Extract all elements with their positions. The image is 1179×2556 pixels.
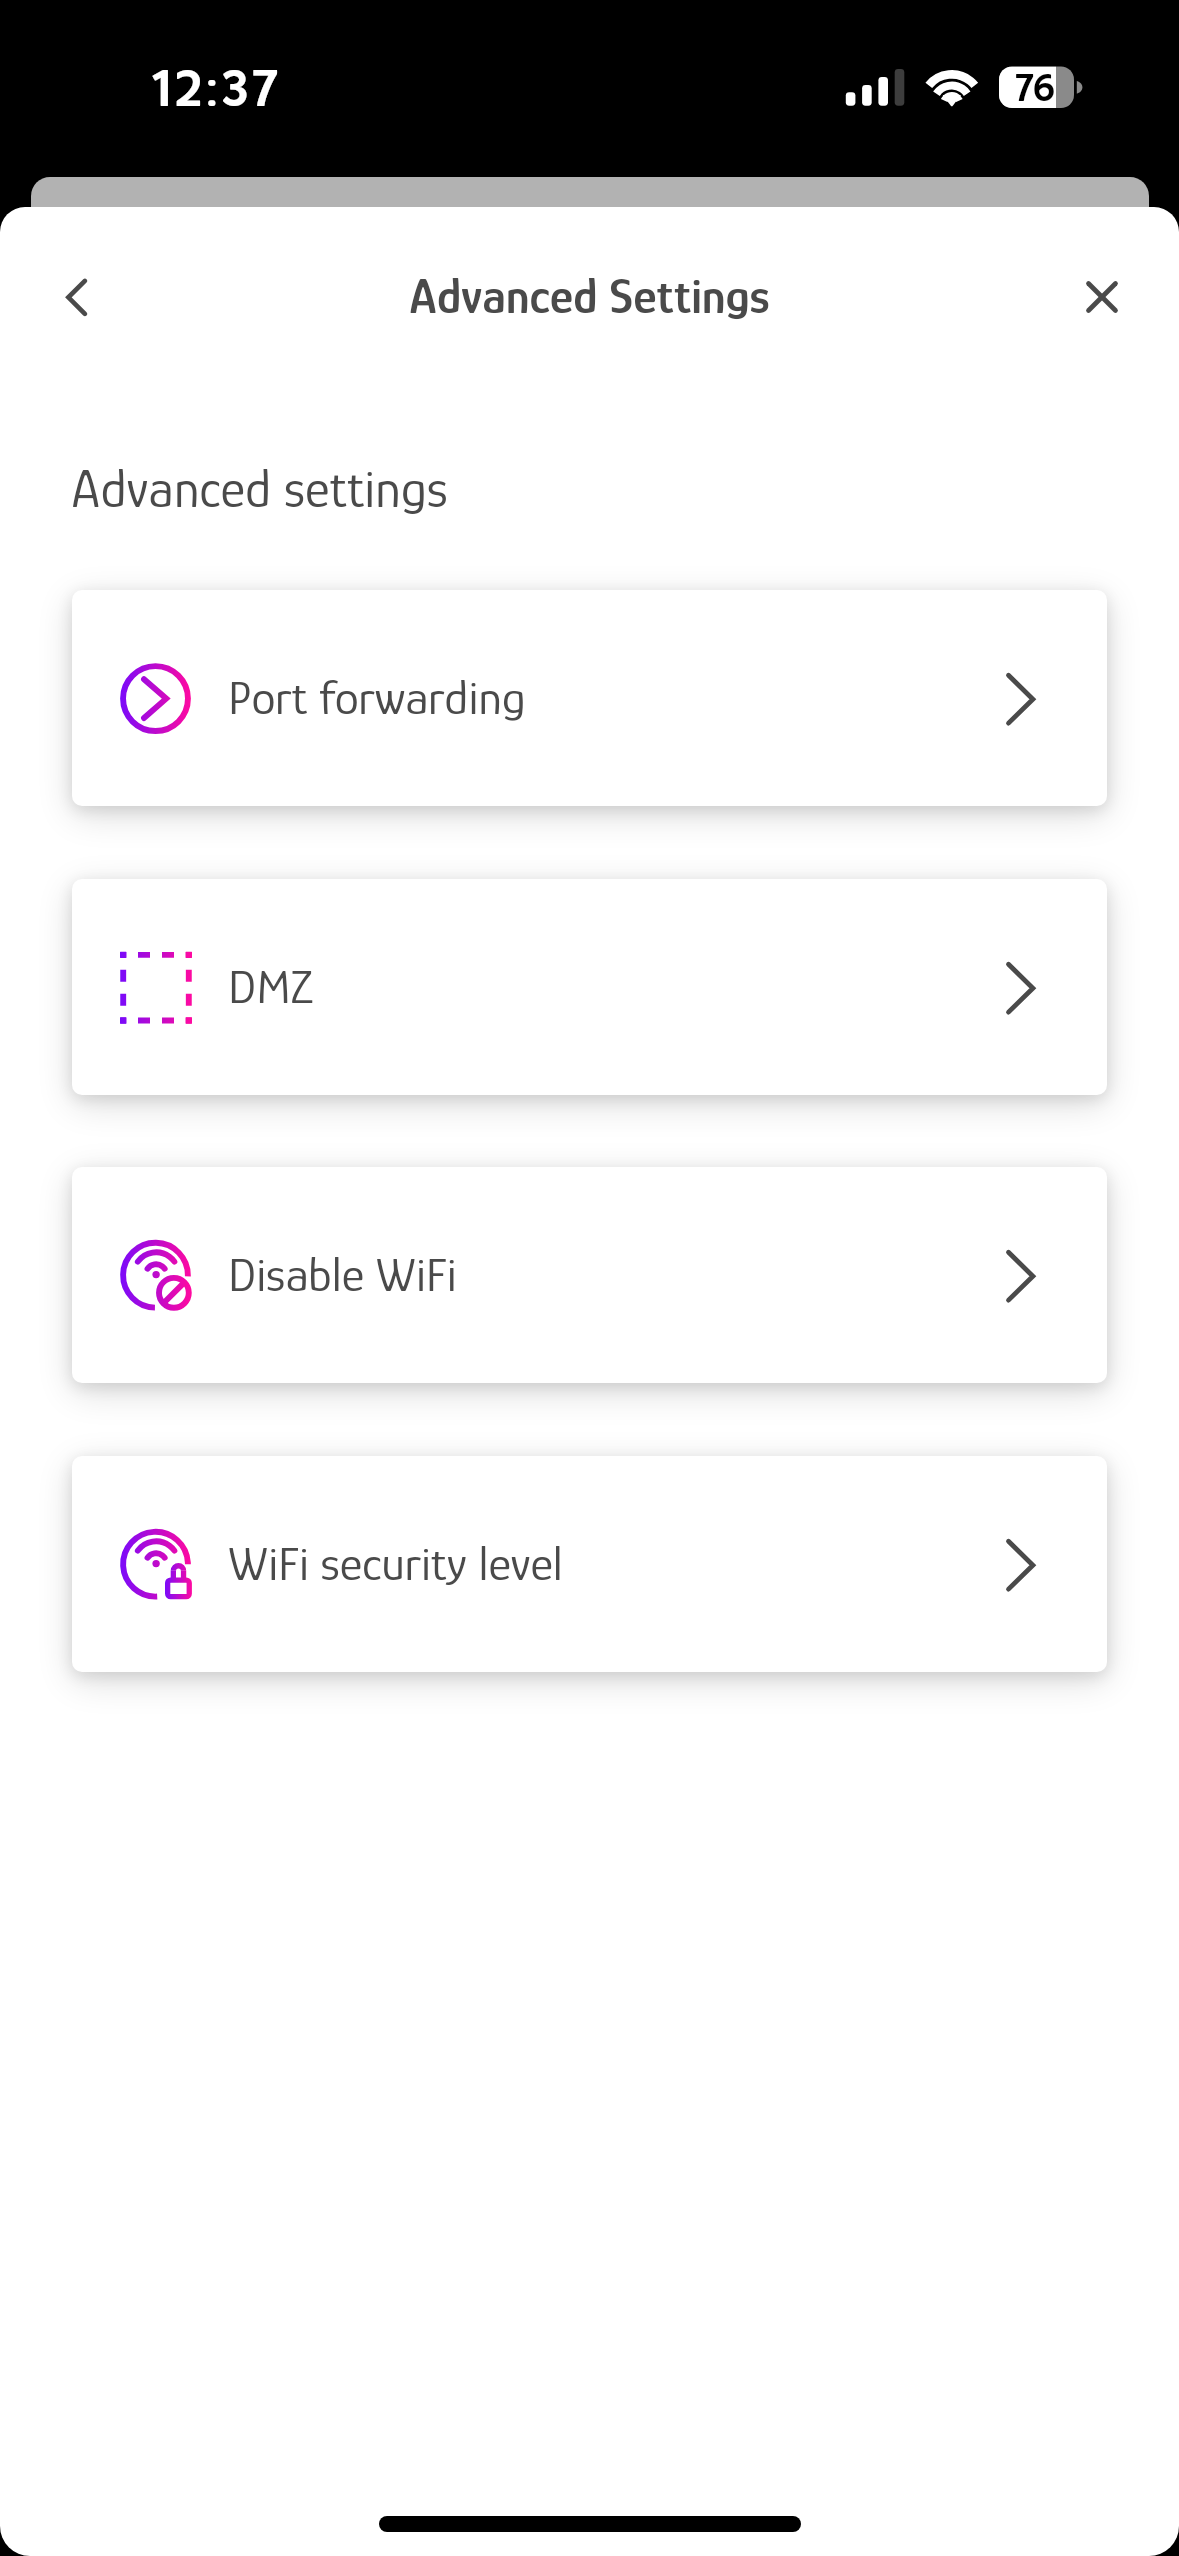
staticText: 12:37: [152, 58, 283, 118]
button[interactable]: Disable WiFi: [72, 1167, 1107, 1383]
staticText: Port forwarding: [228, 670, 526, 725]
staticText: Disable WiFi: [228, 1247, 457, 1302]
button[interactable]: Port forwarding: [72, 590, 1107, 806]
button[interactable]: Back: [40, 261, 112, 333]
staticText: 76: [1015, 66, 1055, 110]
staticText: DMZ: [228, 959, 313, 1014]
staticText: Advanced Settings: [0, 268, 1179, 324]
button[interactable]: Close: [1066, 261, 1138, 333]
staticText: Advanced settings: [71, 459, 448, 519]
button[interactable]: DMZ: [72, 879, 1107, 1095]
staticText: WiFi security level: [228, 1536, 563, 1591]
button[interactable]: WiFi security level: [72, 1456, 1107, 1672]
